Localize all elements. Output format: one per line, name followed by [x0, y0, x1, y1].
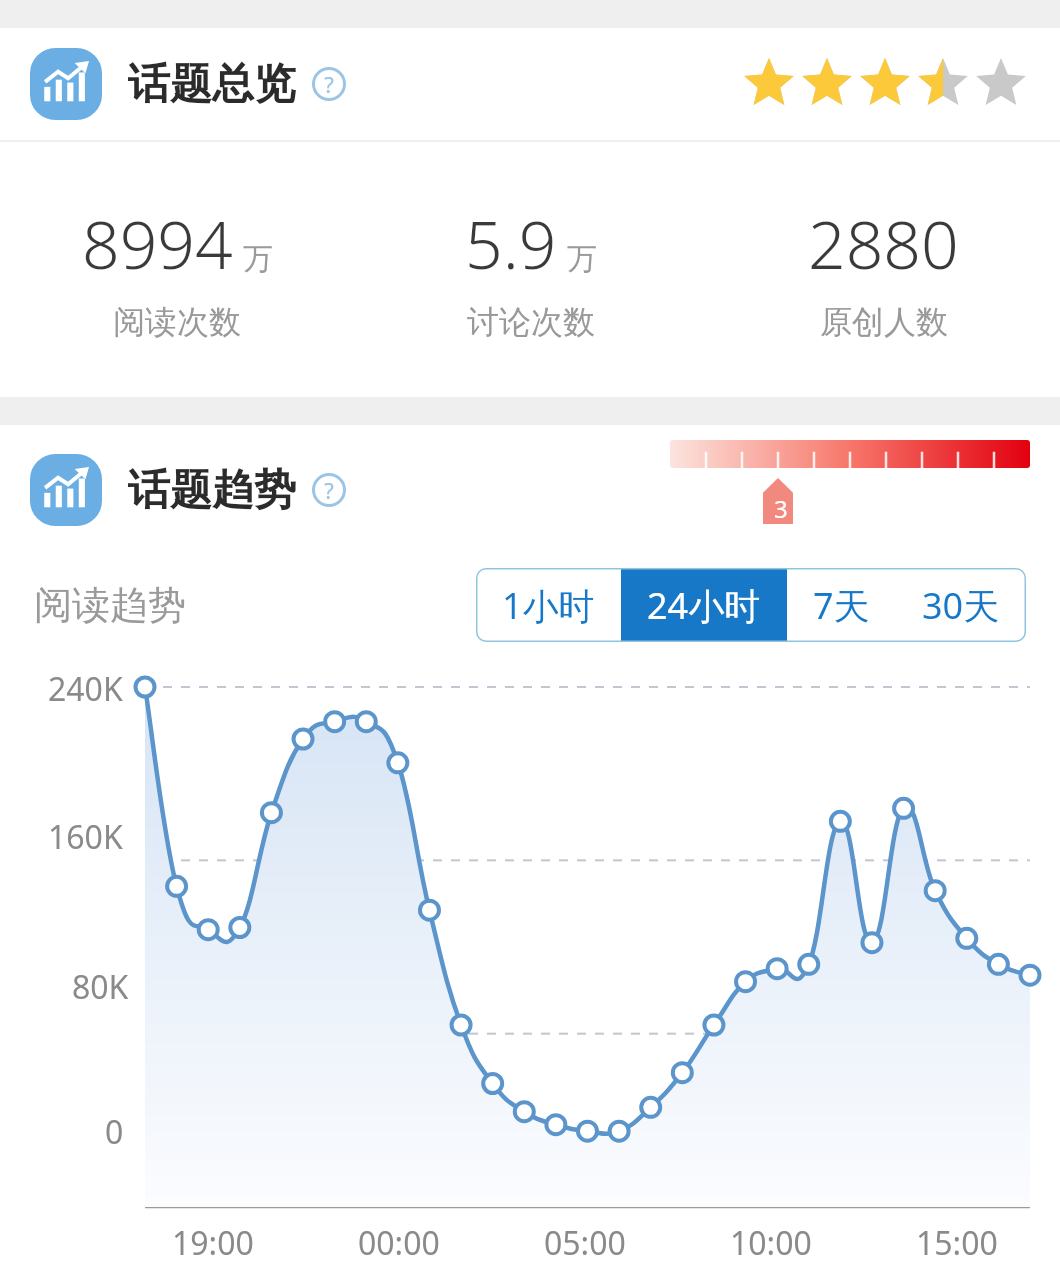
staticText: 话题总览 [128, 58, 296, 111]
button[interactable]: 1小时 [476, 568, 621, 642]
other: Heat level 3 [670, 440, 1030, 540]
button[interactable]: Chart [0, 28, 1060, 140]
staticText: 00:00 [358, 1221, 440, 1265]
button[interactable]: Help [312, 473, 346, 507]
staticText: 讨论次数 [467, 302, 595, 342]
staticText: 24小时 [647, 581, 761, 630]
staticText: 阅读次数 [113, 302, 241, 342]
staticText: 05:00 [544, 1221, 626, 1265]
staticText: ? [324, 475, 334, 505]
button[interactable]: Chart [0, 425, 1060, 555]
other: Rating 3.5 of 5 [740, 56, 1030, 112]
staticText: 0 [105, 1110, 124, 1154]
staticText: 话题趋势 [128, 464, 296, 517]
staticText: 万 [243, 240, 273, 278]
button[interactable]: 7天 [787, 568, 896, 642]
staticText: 10:00 [730, 1221, 812, 1265]
staticText: 160K [48, 815, 123, 859]
staticText: 240K [48, 667, 123, 711]
staticText: 原创人数 [820, 302, 948, 342]
staticText: 15:00 [916, 1221, 998, 1265]
staticText: 80K [72, 965, 129, 1009]
staticText: 8994 [82, 198, 233, 288]
staticText: ? [324, 69, 334, 99]
other: Chart [30, 48, 102, 120]
button[interactable]: 30天 [896, 568, 1026, 642]
staticText: 30天 [922, 581, 1000, 630]
staticText: 5.9 [465, 198, 557, 288]
button[interactable]: Help [312, 67, 346, 101]
staticText: 万 [567, 240, 597, 278]
staticText: 1小时 [502, 581, 595, 630]
other: Chart [30, 454, 102, 526]
staticText: 2880 [808, 198, 959, 288]
staticText: 阅读趋势 [34, 581, 186, 629]
staticText: 19:00 [172, 1221, 254, 1265]
staticText: 3 [774, 492, 788, 525]
staticText: 7天 [813, 581, 870, 630]
button[interactable]: 24小时 [621, 568, 787, 642]
